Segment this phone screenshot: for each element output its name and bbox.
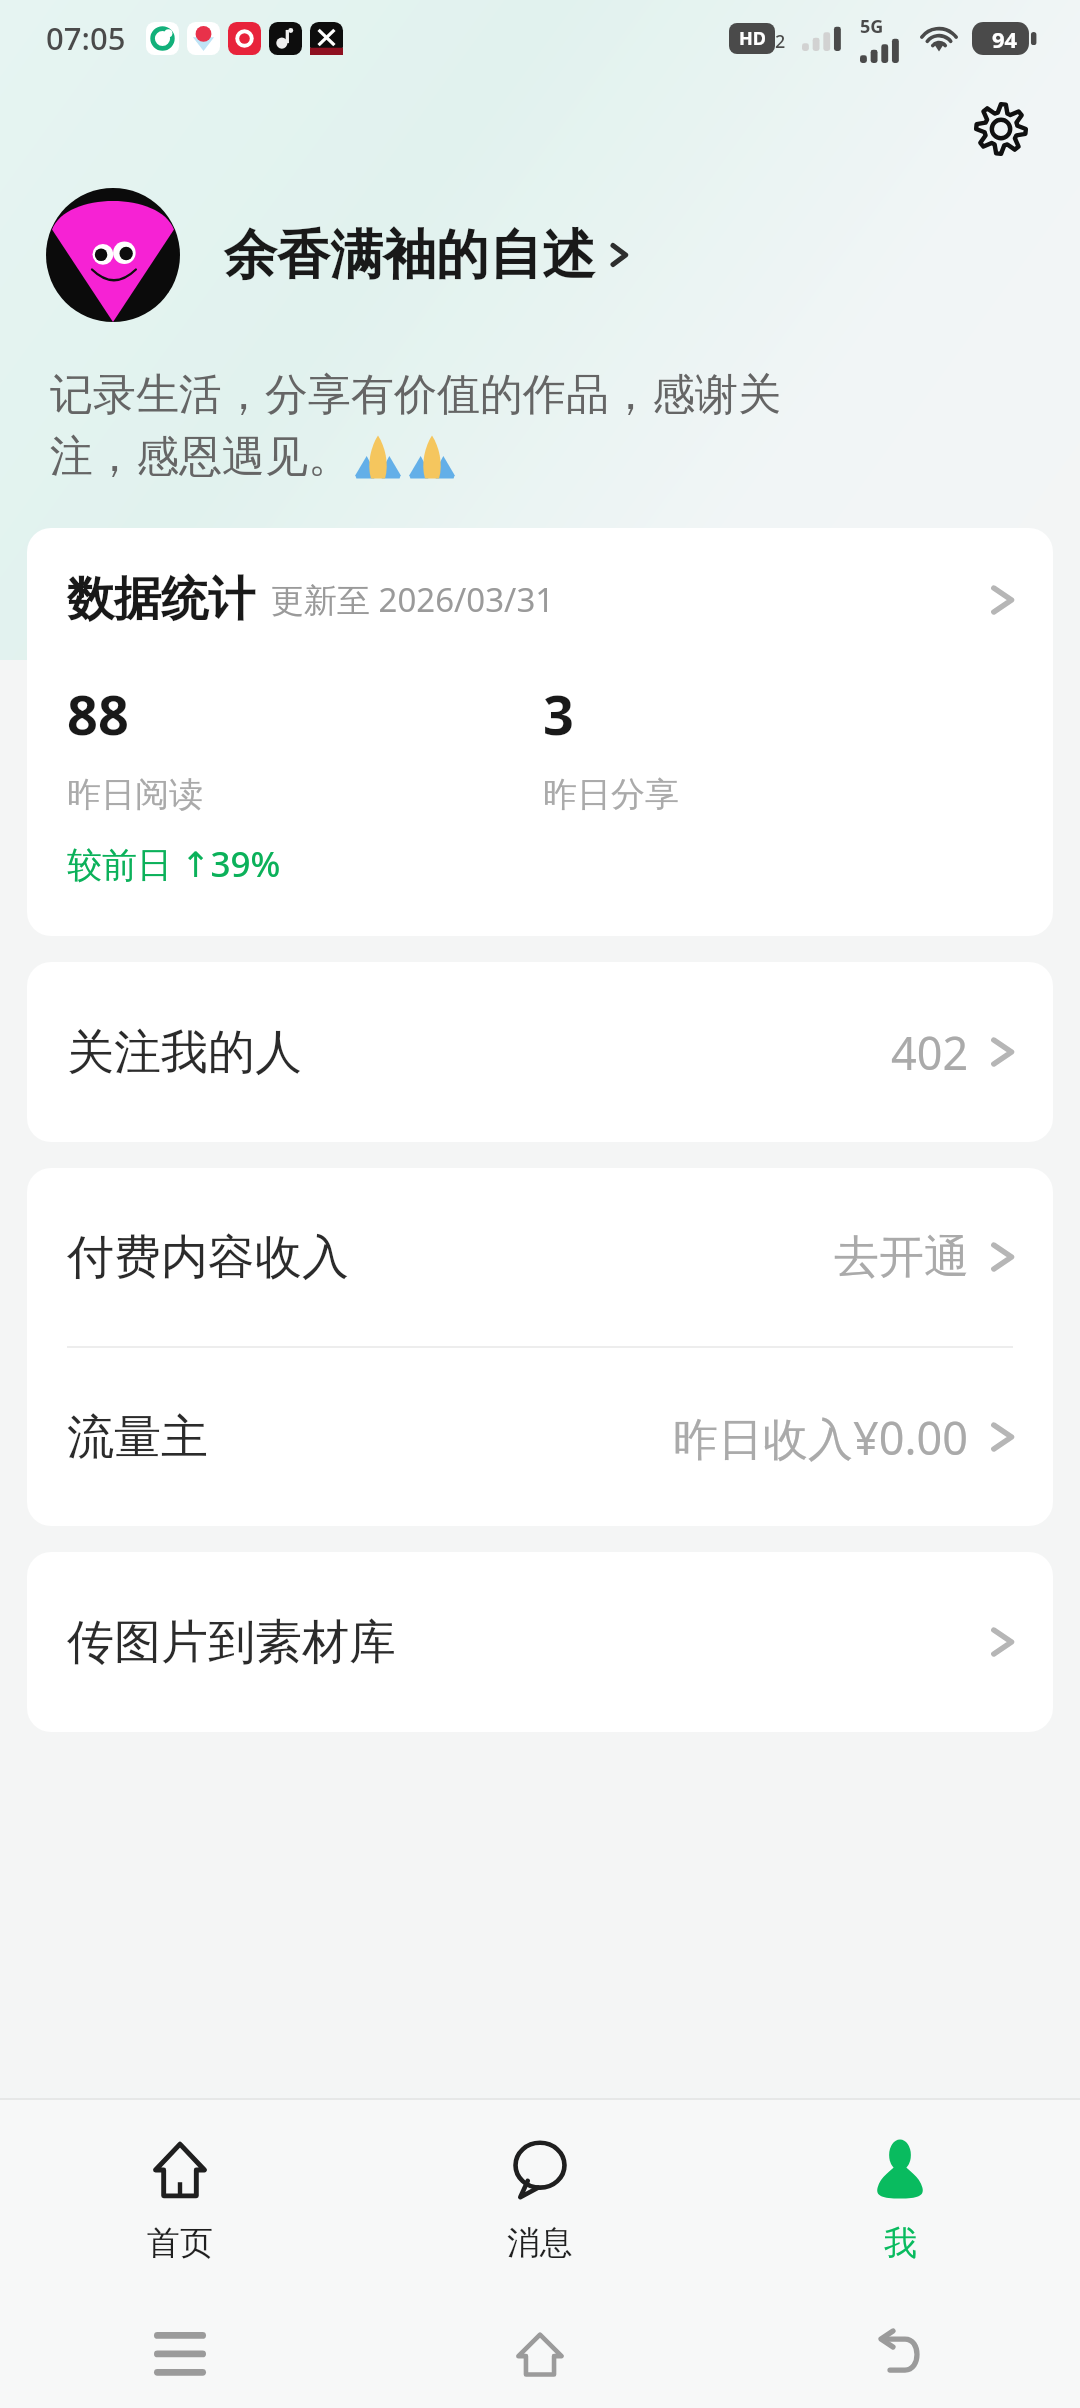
- staticText: 88: [67, 677, 129, 751]
- staticText: 注，感恩遇见。: [50, 430, 351, 484]
- staticText: 消息: [507, 2222, 573, 2264]
- staticText: 我: [884, 2222, 917, 2264]
- staticText: 数据统计: [67, 570, 255, 629]
- staticText: 去开通: [834, 1229, 969, 1286]
- staticText: HD: [739, 26, 766, 51]
- staticText: 流量主: [67, 1408, 208, 1467]
- staticText: 5G: [860, 14, 884, 39]
- button[interactable]: 付费内容收入: [27, 1168, 1053, 1346]
- staticText: 2: [775, 29, 786, 54]
- button[interactable]: 主页: [485, 2300, 595, 2408]
- button[interactable]: 传图片到素材库: [27, 1552, 1053, 1732]
- staticText: 昨日收入¥0.00: [673, 1407, 969, 1468]
- staticText: 3: [543, 677, 574, 751]
- button[interactable]: 数据统计: [27, 528, 1053, 936]
- staticText: 首页: [147, 2222, 213, 2264]
- staticText: 付费内容收入: [67, 1228, 349, 1287]
- button[interactable]: 流量主: [27, 1348, 1053, 1526]
- button[interactable]: 我: [720, 2100, 1080, 2300]
- button[interactable]: 设置: [962, 90, 1040, 168]
- button[interactable]: 返回: [845, 2300, 955, 2408]
- staticText: 昨日阅读: [67, 773, 203, 816]
- button[interactable]: 消息: [360, 2100, 720, 2300]
- staticText: 传图片到素材库: [67, 1613, 396, 1672]
- staticText: 记录生活，分享有价值的作品，感谢关: [50, 368, 781, 422]
- staticText: 余香满袖的自述: [224, 222, 595, 289]
- staticText: 07:05: [46, 17, 126, 59]
- button[interactable]: 首页: [0, 2100, 360, 2300]
- staticText: 昨日分享: [543, 773, 679, 816]
- button[interactable]: 余香满袖的自述: [46, 188, 1034, 322]
- staticText: 94: [992, 24, 1018, 54]
- staticText: 关注我的人: [67, 1023, 302, 1082]
- staticText: 较前日 ↑39%: [67, 840, 281, 888]
- staticText: 更新至 2026/03/31: [271, 577, 555, 622]
- staticText: 402: [891, 1022, 969, 1083]
- button[interactable]: 关注我的人: [27, 962, 1053, 1142]
- button[interactable]: 最近任务: [125, 2300, 235, 2408]
